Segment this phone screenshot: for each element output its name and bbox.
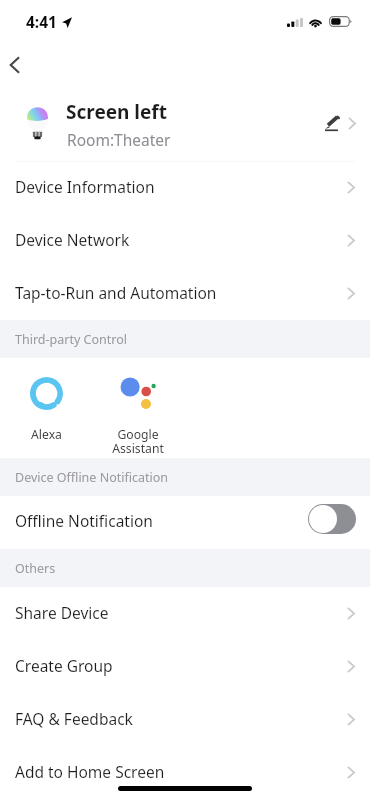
button[interactable]: Alexa (8, 377, 85, 452)
staticText: Device Offline Notification (15, 469, 169, 486)
button[interactable]: Edit name (315, 108, 346, 140)
staticText: Offline Notification (15, 510, 153, 531)
staticText: Device Network (15, 229, 130, 250)
button[interactable]: Tap-to-Run and Automation (0, 267, 370, 320)
staticText: Alexa (31, 426, 62, 443)
button[interactable]: Google Assistant (99, 377, 176, 452)
button[interactable]: Device Network (0, 214, 370, 267)
staticText: Add to Home Screen (15, 761, 165, 782)
staticText: Google Assistant (112, 426, 164, 456)
button[interactable]: Offline Notification toggle (308, 504, 356, 534)
staticText: Tap-to-Run and Automation (15, 282, 217, 303)
staticText: 4:41 (26, 11, 57, 32)
staticText: Device Information (15, 176, 155, 197)
button[interactable]: Device Information (0, 161, 370, 214)
button[interactable]: FAQ & Feedback (0, 693, 370, 746)
button[interactable]: Back (0, 44, 42, 86)
staticText: Third-party Control (15, 331, 127, 348)
staticText: Share Device (15, 602, 109, 623)
button[interactable]: Create Group (0, 640, 370, 693)
button[interactable]: Add to Home Screen (0, 746, 370, 799)
staticText: Others (15, 560, 56, 577)
staticText: Room:Theater (67, 129, 171, 150)
staticText: FAQ & Feedback (15, 708, 133, 729)
button[interactable]: Share Device (0, 587, 370, 640)
staticText: Create Group (15, 655, 113, 676)
staticText: Screen left (66, 99, 167, 125)
